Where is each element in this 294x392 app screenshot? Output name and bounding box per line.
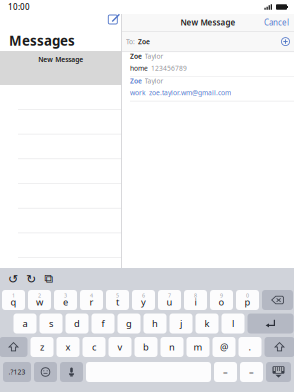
button[interactable]: Redo [26,274,36,284]
staticText: New Message [38,55,83,64]
staticText: .?123 [8,368,25,376]
staticText: q [10,296,16,308]
button[interactable] [240,362,263,382]
button[interactable]: Add contact [281,37,290,46]
button[interactable] [39,313,62,333]
staticText: Messages [9,32,75,49]
button[interactable]: 8 [184,290,207,310]
button[interactable]: 9 [210,290,233,310]
staticText: s [49,317,53,330]
staticText: l [232,317,234,330]
staticText: 123456789 [151,64,187,73]
button[interactable]: Shift [264,337,294,357]
staticText: zoe.taylor.wm@gmail.com [149,88,231,97]
button[interactable] [91,313,114,333]
button[interactable]: Hide keyboard [266,362,291,382]
staticText: 2 [38,292,41,299]
staticText: y [141,296,146,308]
staticText: Cancel [264,17,289,28]
button[interactable] [82,337,105,357]
button[interactable]: 4 [80,290,103,310]
staticText: u [166,296,172,308]
staticText: Taylor [144,76,163,85]
button[interactable]: Dictate [60,362,83,382]
staticText: 5 [116,292,119,299]
button[interactable]: Zoe [122,52,294,76]
button[interactable] [186,337,209,357]
staticText: r [89,296,93,308]
staticText: n [169,341,175,353]
staticText: f [101,317,104,330]
button[interactable]: 3 [54,290,77,310]
staticText: 1 [12,292,15,299]
button[interactable] [108,337,131,357]
button[interactable] [195,313,218,333]
staticText: Taylor [144,52,163,61]
button[interactable] [160,337,183,357]
button[interactable]: Undo [8,274,18,284]
button[interactable] [212,337,235,357]
button[interactable]: 1 [2,290,25,310]
button[interactable]: Return [247,313,293,333]
button[interactable]: New Message [0,51,121,85]
staticText: p [244,296,250,308]
staticText: @ [220,341,228,353]
staticText: . [248,341,251,353]
button[interactable] [65,313,88,333]
staticText: c [92,341,96,353]
staticText: i [194,296,196,308]
staticText: b [143,341,149,353]
staticText: ⧉ [44,273,53,285]
staticText: Zoe [130,52,142,61]
staticText: 9 [220,292,223,299]
button[interactable]: Cancel [261,14,292,31]
staticText: ↻ [26,272,36,286]
button[interactable]: 7 [158,290,181,310]
staticText: Zoe [130,76,142,85]
button[interactable]: Delete [262,290,293,310]
staticText: m [193,341,202,353]
staticText: – [249,366,254,378]
staticText: 10:00 [8,2,30,12]
staticText: 0 [246,292,249,299]
staticText: g [126,317,132,330]
staticText: New Message [180,17,235,28]
button[interactable] [13,313,36,333]
staticText: home [130,64,148,73]
button[interactable] [169,313,192,333]
button[interactable]: 2 [28,290,51,310]
staticText: To: [126,37,135,46]
staticText: j [180,317,182,330]
staticText: – [223,366,228,378]
staticText: 7 [168,292,171,299]
button[interactable]: Paste [44,274,54,284]
button[interactable]: Zoe [122,77,294,101]
staticText: e [63,296,68,308]
button[interactable] [30,337,53,357]
staticText: 8 [194,292,197,299]
staticText: x [65,341,70,353]
button[interactable] [56,337,79,357]
button[interactable]: 5 [106,290,129,310]
staticText: k [204,317,209,330]
staticText: 6 [142,292,145,299]
button[interactable] [143,313,166,333]
button[interactable]: Shift [0,337,27,357]
button[interactable] [214,362,237,382]
button[interactable] [3,362,31,382]
staticText: w [36,296,43,308]
button[interactable] [134,337,157,357]
staticText: t [116,296,119,308]
staticText: v [117,341,122,353]
button[interactable] [117,313,140,333]
staticText: 4 [90,292,93,299]
staticText: Zoe [138,37,150,46]
button[interactable]: 6 [132,290,155,310]
button[interactable]: 0 [236,290,259,310]
button[interactable] [238,337,261,357]
button[interactable]: Emoji [34,362,57,382]
button[interactable]: Compose [108,13,120,24]
button[interactable] [221,313,244,333]
staticText: d [74,317,80,330]
